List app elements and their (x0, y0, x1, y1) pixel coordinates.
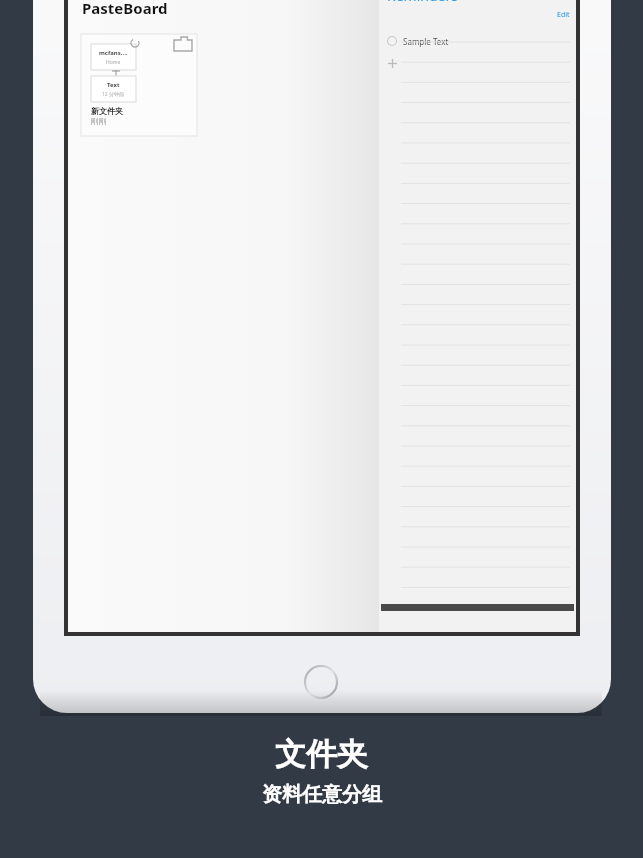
staticText: mcfans.... (99, 49, 128, 57)
staticText: Reminders (387, 0, 458, 5)
staticText: Sample Text (403, 36, 449, 47)
staticText: Edit (557, 10, 570, 20)
staticText: PasteBoard (82, 0, 168, 18)
staticText: 刚刚 (91, 116, 107, 126)
staticText: 资料任意分组 (262, 782, 382, 807)
staticText: 12 分钟前 (102, 91, 125, 98)
staticText: 新文件夹 (91, 106, 123, 116)
staticText: Home (106, 59, 121, 66)
button[interactable]: 1 (557, 0, 570, 20)
staticText: Text (107, 81, 120, 89)
staticText: 文件夹 (275, 735, 368, 774)
button[interactable]: Home (303, 664, 339, 700)
button[interactable]: mcfans.... (81, 34, 197, 136)
button[interactable]: Sample Text (387, 30, 576, 52)
button[interactable]: Add reminder (387, 52, 576, 74)
